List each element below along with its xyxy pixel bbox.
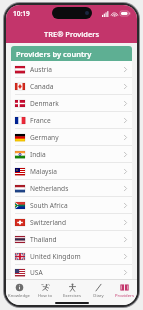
staticText: USA [30, 268, 43, 277]
staticText: Austria [30, 65, 52, 74]
staticText: Diary [93, 293, 104, 299]
button[interactable]: Knowledge [6, 281, 32, 301]
staticText: Canada [30, 82, 54, 91]
button[interactable]: Thailand [11, 231, 132, 247]
staticText: How to [38, 293, 52, 299]
button[interactable]: Exercises [59, 281, 85, 301]
button[interactable]: India [11, 146, 132, 162]
staticText: United Kingdom [30, 252, 81, 261]
button[interactable]: Malaysia [11, 163, 132, 179]
button[interactable]: Switzerland [11, 214, 132, 230]
staticText: India [30, 150, 46, 159]
staticText: Denmark [30, 99, 59, 108]
staticText: 10:19 [13, 9, 30, 18]
button[interactable]: Denmark [11, 95, 132, 111]
staticText: Malaysia [30, 167, 58, 176]
staticText: Providers by country [16, 49, 92, 59]
staticText: Exercises [63, 293, 81, 299]
staticText: TRE® Providers [44, 29, 100, 39]
staticText: Thailand [30, 235, 57, 244]
button[interactable]: Providers [111, 281, 137, 301]
staticText: Knowledge [8, 293, 30, 299]
staticText: Switzerland [30, 218, 66, 227]
button[interactable]: United Kingdom [11, 248, 132, 264]
button[interactable]: Diary [85, 281, 111, 301]
staticText: South Africa [30, 201, 68, 210]
staticText: Netherlands [30, 184, 69, 193]
button[interactable]: How to [32, 281, 58, 301]
button[interactable]: USA [11, 265, 132, 279]
staticText: France [30, 116, 51, 125]
staticText: Providers [115, 293, 134, 299]
button[interactable]: South Africa [11, 197, 132, 213]
staticText: Germany [30, 133, 59, 142]
button[interactable]: Germany [11, 129, 132, 145]
button[interactable]: Canada [11, 78, 132, 94]
button[interactable]: Austria [11, 61, 132, 77]
button[interactable]: France [11, 112, 132, 128]
button[interactable]: Netherlands [11, 180, 132, 196]
